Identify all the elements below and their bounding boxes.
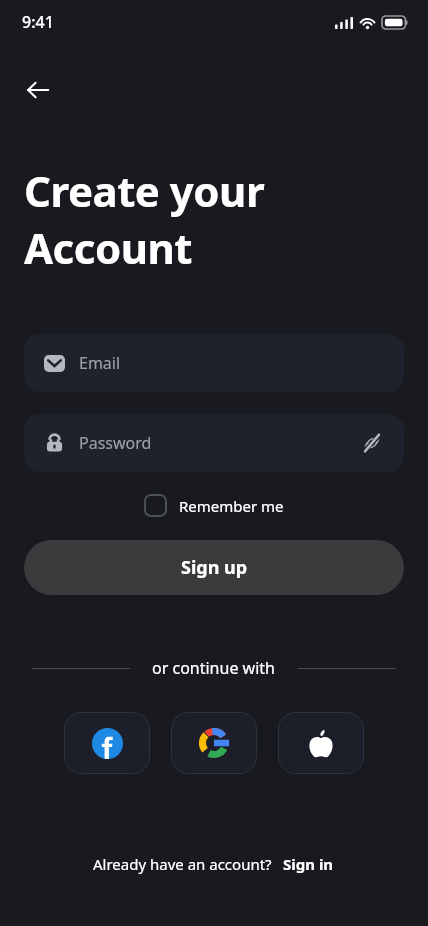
button[interactable]: Email bbox=[24, 334, 404, 392]
staticText: Create your bbox=[24, 162, 265, 219]
staticText: Password bbox=[79, 432, 152, 454]
staticText: Sign in bbox=[283, 854, 334, 874]
staticText: Already have an account? bbox=[93, 854, 272, 874]
button[interactable]: Continue with Facebook bbox=[64, 712, 150, 774]
button[interactable]: Sign in bbox=[281, 852, 336, 876]
staticText: Account bbox=[24, 219, 192, 276]
staticText: Sign up bbox=[181, 555, 248, 580]
staticText: 9:41 bbox=[22, 11, 54, 33]
button[interactable]: Show password bbox=[352, 423, 392, 463]
button[interactable]: Continue with Google bbox=[171, 712, 257, 774]
staticText: or continue with bbox=[152, 657, 275, 679]
button[interactable]: Back bbox=[14, 66, 62, 114]
button[interactable]: Sign up bbox=[24, 540, 404, 595]
button[interactable]: Remember me bbox=[140, 490, 288, 521]
button[interactable]: Continue with Apple bbox=[278, 712, 364, 774]
staticText: Email bbox=[79, 352, 121, 374]
button[interactable]: Password bbox=[24, 414, 404, 472]
staticText: Remember me bbox=[179, 496, 284, 516]
